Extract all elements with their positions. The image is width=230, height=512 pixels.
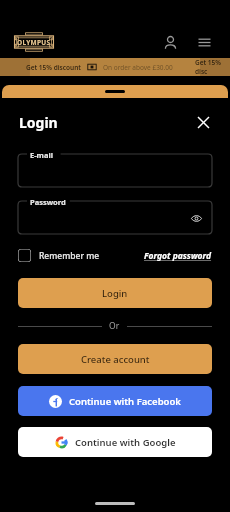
button[interactable]: Remember me — [18, 249, 100, 262]
staticText: Continue with Facebook — [69, 395, 181, 408]
staticText: Continue with Google — [75, 436, 176, 449]
button[interactable]: Olympus logo — [13, 31, 55, 53]
staticText: Get 15% discount — [26, 63, 81, 72]
button[interactable]: Continue with Facebook — [18, 386, 212, 416]
button[interactable]: Password — [18, 201, 212, 234]
button[interactable]: Forgot password — [144, 250, 212, 262]
staticText: Login — [102, 287, 128, 300]
staticText: Login — [19, 113, 58, 132]
staticText: Create account — [81, 353, 150, 366]
button[interactable]: Account — [157, 29, 183, 55]
staticText: Remember me — [39, 250, 100, 262]
staticText: Or — [109, 320, 120, 332]
button[interactable]: E-mail — [18, 154, 212, 187]
button[interactable]: Create account — [18, 344, 212, 374]
button[interactable]: Login — [18, 278, 212, 308]
button[interactable]: Continue with Google — [18, 427, 212, 457]
button[interactable]: Get 15% discount — [0, 58, 230, 76]
staticText: On order above £30.00 — [103, 63, 173, 72]
button[interactable]: Close — [192, 111, 214, 133]
staticText: Forgot password — [144, 250, 212, 262]
staticText: E-mail — [30, 150, 53, 160]
staticText: Get 15% disc — [195, 58, 230, 76]
button[interactable]: Show password — [188, 210, 204, 226]
staticText: OLYMPUS — [17, 38, 51, 47]
staticText: Password — [30, 197, 66, 207]
button[interactable]: Menu — [191, 29, 217, 55]
